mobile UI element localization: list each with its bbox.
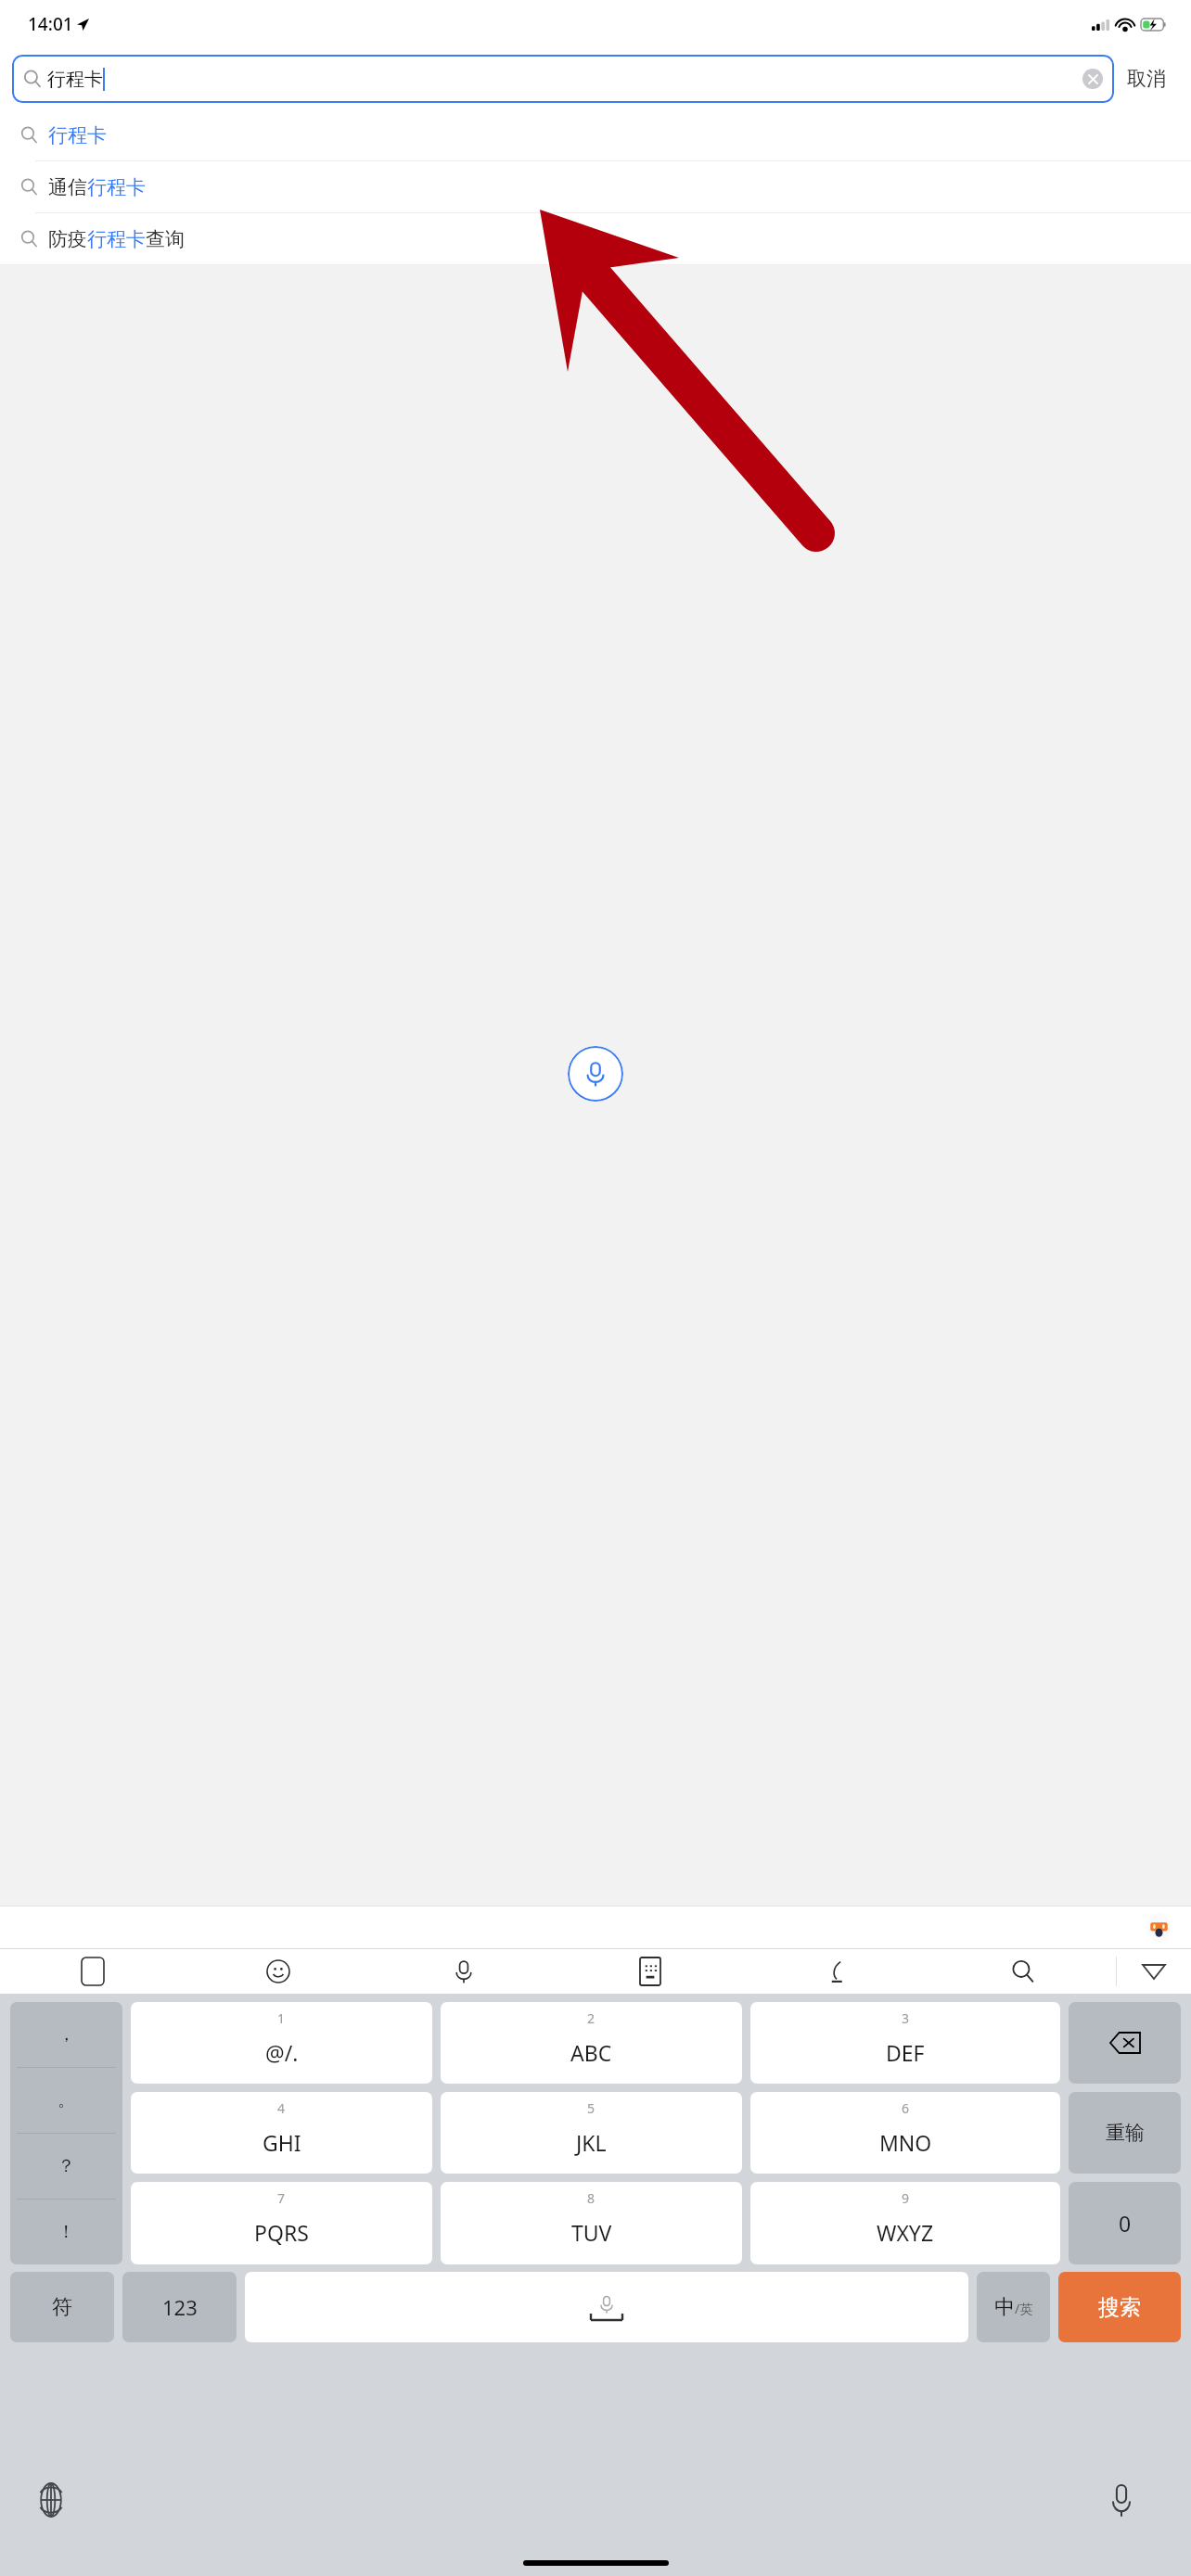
staticText: 9: [902, 2189, 910, 2207]
button[interactable]: 9: [750, 2182, 1060, 2264]
button[interactable]: 行程卡: [0, 109, 1191, 160]
staticText: 行程卡: [47, 68, 103, 91]
staticText: 0: [1119, 2209, 1132, 2238]
button[interactable]: 行程卡: [12, 55, 1114, 103]
staticText: 7: [277, 2189, 286, 2207]
button[interactable]: Voice input: [371, 1949, 557, 1994]
button[interactable]: Space: [245, 2272, 968, 2342]
staticText: DEF: [886, 2038, 925, 2067]
staticText: 搜索: [1098, 2294, 1141, 2321]
button[interactable]: 5: [441, 2092, 742, 2174]
staticText: @/.: [265, 2038, 299, 2067]
button[interactable]: 8: [441, 2182, 742, 2264]
button[interactable]: Keyboard layout: [557, 1949, 743, 1994]
button[interactable]: ，: [10, 2002, 122, 2264]
staticText: TUV: [571, 2218, 612, 2247]
staticText: 2: [587, 2009, 595, 2027]
button[interactable]: Change language: [33, 2482, 69, 2518]
staticText: ABC: [570, 2038, 612, 2067]
button[interactable]: 7: [131, 2182, 432, 2264]
staticText: 。: [58, 2089, 75, 2111]
button[interactable]: Search: [929, 1949, 1116, 1994]
button[interactable]: Clear: [1082, 69, 1103, 89]
staticText: 1: [277, 2009, 286, 2027]
staticText: GHI: [263, 2128, 301, 2157]
button[interactable]: 0: [1069, 2182, 1181, 2264]
staticText: 防疫行程卡查询: [48, 227, 185, 251]
staticText: 通信行程卡: [48, 175, 146, 199]
staticText: ？: [58, 2155, 75, 2177]
staticText: WXYZ: [877, 2218, 934, 2247]
staticText: 6: [902, 2099, 910, 2117]
button[interactable]: 搜索: [1058, 2272, 1181, 2342]
staticText: 行程卡: [48, 123, 107, 147]
staticText: JKL: [576, 2128, 607, 2157]
button[interactable]: Sogou: [1147, 1912, 1171, 1944]
staticText: 123: [162, 2293, 198, 2321]
button[interactable]: 6: [750, 2092, 1060, 2174]
staticText: 3: [902, 2009, 910, 2027]
button[interactable]: Emoji: [186, 1949, 371, 1994]
button[interactable]: Voice input: [1108, 2479, 1135, 2521]
staticText: ！: [58, 2221, 75, 2243]
button[interactable]: 重输: [1069, 2092, 1181, 2174]
button[interactable]: 通信行程卡: [0, 161, 1191, 212]
staticText: 重输: [1106, 2121, 1145, 2145]
staticText: 取消: [1127, 67, 1166, 91]
staticText: 5: [587, 2099, 595, 2117]
button[interactable]: 中/英: [977, 2272, 1050, 2342]
button[interactable]: Backspace: [1069, 2002, 1181, 2084]
button[interactable]: 123: [122, 2272, 237, 2342]
button[interactable]: 符: [10, 2272, 114, 2342]
button[interactable]: Handwriting: [743, 1949, 929, 1994]
button[interactable]: 1: [131, 2002, 432, 2084]
staticText: 14:01: [28, 12, 73, 36]
staticText: 8: [587, 2189, 595, 2207]
staticText: 4: [277, 2099, 286, 2117]
button[interactable]: 取消: [1114, 59, 1179, 98]
staticText: MNO: [879, 2128, 932, 2157]
staticText: ，: [58, 2023, 75, 2046]
button[interactable]: 3: [750, 2002, 1060, 2084]
button[interactable]: 4: [131, 2092, 432, 2174]
staticText: PQRS: [254, 2218, 309, 2247]
button[interactable]: 2: [441, 2002, 742, 2084]
button[interactable]: 防疫行程卡查询: [0, 213, 1191, 264]
button[interactable]: Hide keyboard: [1117, 1949, 1191, 1994]
button[interactable]: Voice search: [568, 1046, 623, 1102]
button[interactable]: Sogou logo: [0, 1949, 186, 1994]
staticText: 中/英: [994, 2294, 1033, 2320]
staticText: 符: [52, 2294, 72, 2320]
